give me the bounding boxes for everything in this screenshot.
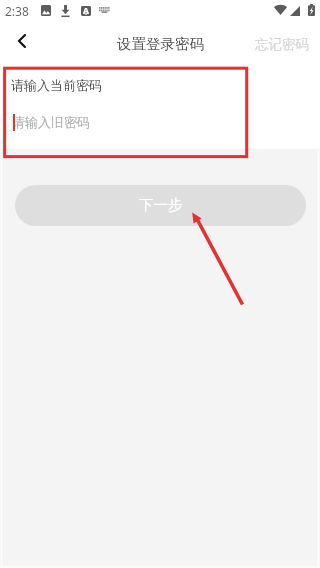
button[interactable]: 下一步 bbox=[15, 185, 306, 226]
staticText: 请输入旧密码 bbox=[12, 114, 90, 130]
staticText: 忘记密码 bbox=[255, 36, 309, 53]
button[interactable]: 请输入旧密码 bbox=[0, 103, 320, 141]
staticText: A bbox=[83, 5, 89, 15]
staticText: 设置登录密码 bbox=[117, 35, 204, 53]
staticText: 2:38 bbox=[5, 3, 29, 19]
staticText: 下一步 bbox=[139, 196, 183, 214]
button[interactable]: Back bbox=[2, 21, 42, 59]
button[interactable]: 忘记密码 bbox=[244, 28, 320, 61]
button[interactable]: 请输入当前密码 bbox=[0, 66, 320, 104]
staticText: 请输入当前密码 bbox=[11, 77, 102, 93]
